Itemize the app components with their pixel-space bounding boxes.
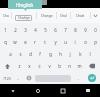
staticText: j — [69, 51, 71, 57]
staticText: n — [68, 63, 71, 69]
staticText: h — [59, 51, 62, 57]
button[interactable]: Switch keyboard — [75, 84, 100, 97]
staticText: Chale — [76, 14, 85, 18]
button[interactable]: 5 — [40, 23, 50, 36]
button[interactable]: Close keyboard — [0, 84, 25, 97]
staticText: u — [64, 39, 67, 45]
staticText: z — [18, 63, 21, 69]
button[interactable]: p — [90, 36, 100, 48]
staticText: a — [9, 51, 12, 57]
button[interactable]: Hinglish — [8, 0, 42, 9]
staticText: d — [29, 51, 32, 57]
button[interactable]: w — [10, 36, 20, 48]
button[interactable]: Chal — [56, 8, 70, 23]
button[interactable]: f — [35, 48, 45, 60]
button[interactable]: ?123 — [0, 72, 13, 84]
button[interactable]: k — [75, 48, 85, 60]
staticText: b — [58, 63, 61, 69]
button[interactable]: 4 — [30, 23, 40, 36]
button[interactable]: Chahiye — [15, 15, 32, 21]
button[interactable]: 7 — [60, 23, 70, 36]
staticText: Chal — [60, 14, 67, 18]
button[interactable]: l — [85, 48, 95, 60]
staticText: c — [38, 63, 41, 69]
button[interactable]: v — [44, 60, 54, 72]
staticText: x — [28, 63, 31, 69]
staticText: 2 — [14, 27, 17, 33]
staticText: 0 — [94, 27, 97, 33]
staticText: l — [89, 51, 91, 57]
staticText: 6 — [54, 27, 57, 33]
button[interactable]: o — [80, 36, 90, 48]
button[interactable]: s — [15, 48, 25, 60]
button[interactable]: Emoji — [22, 72, 35, 84]
staticText: m — [77, 63, 82, 69]
staticText: Change — [41, 14, 53, 18]
button[interactable]: Home — [25, 84, 50, 97]
button[interactable]: 0 — [90, 23, 100, 36]
staticText: i — [74, 39, 76, 45]
staticText: ?123 — [3, 76, 11, 81]
button[interactable]: h — [55, 48, 65, 60]
button[interactable]: Change — [36, 8, 57, 23]
button[interactable]: More suggestions — [90, 8, 100, 23]
button[interactable]: m — [74, 60, 84, 72]
staticText: w — [13, 39, 17, 45]
staticText: 5 — [44, 27, 47, 33]
staticText: 7 — [64, 27, 67, 33]
staticText: . — [77, 75, 79, 81]
button[interactable]: t — [40, 36, 50, 48]
button[interactable]: 9 — [80, 23, 90, 36]
button[interactable]: Shift — [0, 60, 14, 72]
button[interactable]: e — [20, 36, 30, 48]
button[interactable]: d — [25, 48, 35, 60]
button[interactable]: b — [54, 60, 64, 72]
staticText: p — [94, 39, 97, 45]
staticText: s — [19, 51, 22, 57]
staticText: o — [84, 39, 87, 45]
button[interactable]: i — [70, 36, 80, 48]
staticText: q — [4, 39, 7, 45]
staticText: v — [48, 63, 51, 69]
staticText: , — [17, 75, 19, 81]
button[interactable]: r — [30, 36, 40, 48]
button[interactable]: Recents — [50, 84, 75, 97]
staticText: Hinglish — [16, 2, 34, 8]
staticText: e — [24, 39, 27, 45]
button[interactable]: z — [14, 60, 24, 72]
staticText: k — [79, 51, 82, 57]
button[interactable]: 3 — [20, 23, 30, 36]
staticText: Chahiye — [18, 16, 30, 20]
button[interactable]: 1 — [0, 23, 10, 36]
button[interactable]: Chale — [70, 8, 90, 23]
button[interactable]: n — [64, 60, 74, 72]
button[interactable]: Backspace — [84, 60, 100, 72]
button[interactable]: g — [45, 48, 55, 60]
staticText: g — [49, 51, 52, 57]
button[interactable]: Enter — [84, 72, 100, 84]
staticText: 4 — [34, 27, 37, 33]
button[interactable]: a — [5, 48, 15, 60]
button[interactable]: Cha — [0, 8, 11, 23]
button[interactable]: y — [50, 36, 60, 48]
staticText: 1 — [4, 27, 7, 33]
staticText: f — [39, 51, 41, 57]
button[interactable]: j — [65, 48, 75, 60]
button[interactable]: c — [34, 60, 44, 72]
staticText: r — [34, 39, 36, 45]
button[interactable]: 2 — [10, 23, 20, 36]
staticText: 3 — [24, 27, 27, 33]
button[interactable]: u — [60, 36, 70, 48]
button[interactable]: x — [24, 60, 34, 72]
staticText: t — [44, 39, 46, 45]
staticText: Cha — [3, 14, 9, 18]
button[interactable]: q — [0, 36, 10, 48]
staticText: y — [54, 39, 57, 45]
button[interactable]: , — [13, 72, 22, 84]
staticText: 8 — [74, 27, 77, 33]
staticText: 9 — [84, 27, 87, 33]
button[interactable]: 8 — [70, 23, 80, 36]
button[interactable]: 6 — [50, 23, 60, 36]
